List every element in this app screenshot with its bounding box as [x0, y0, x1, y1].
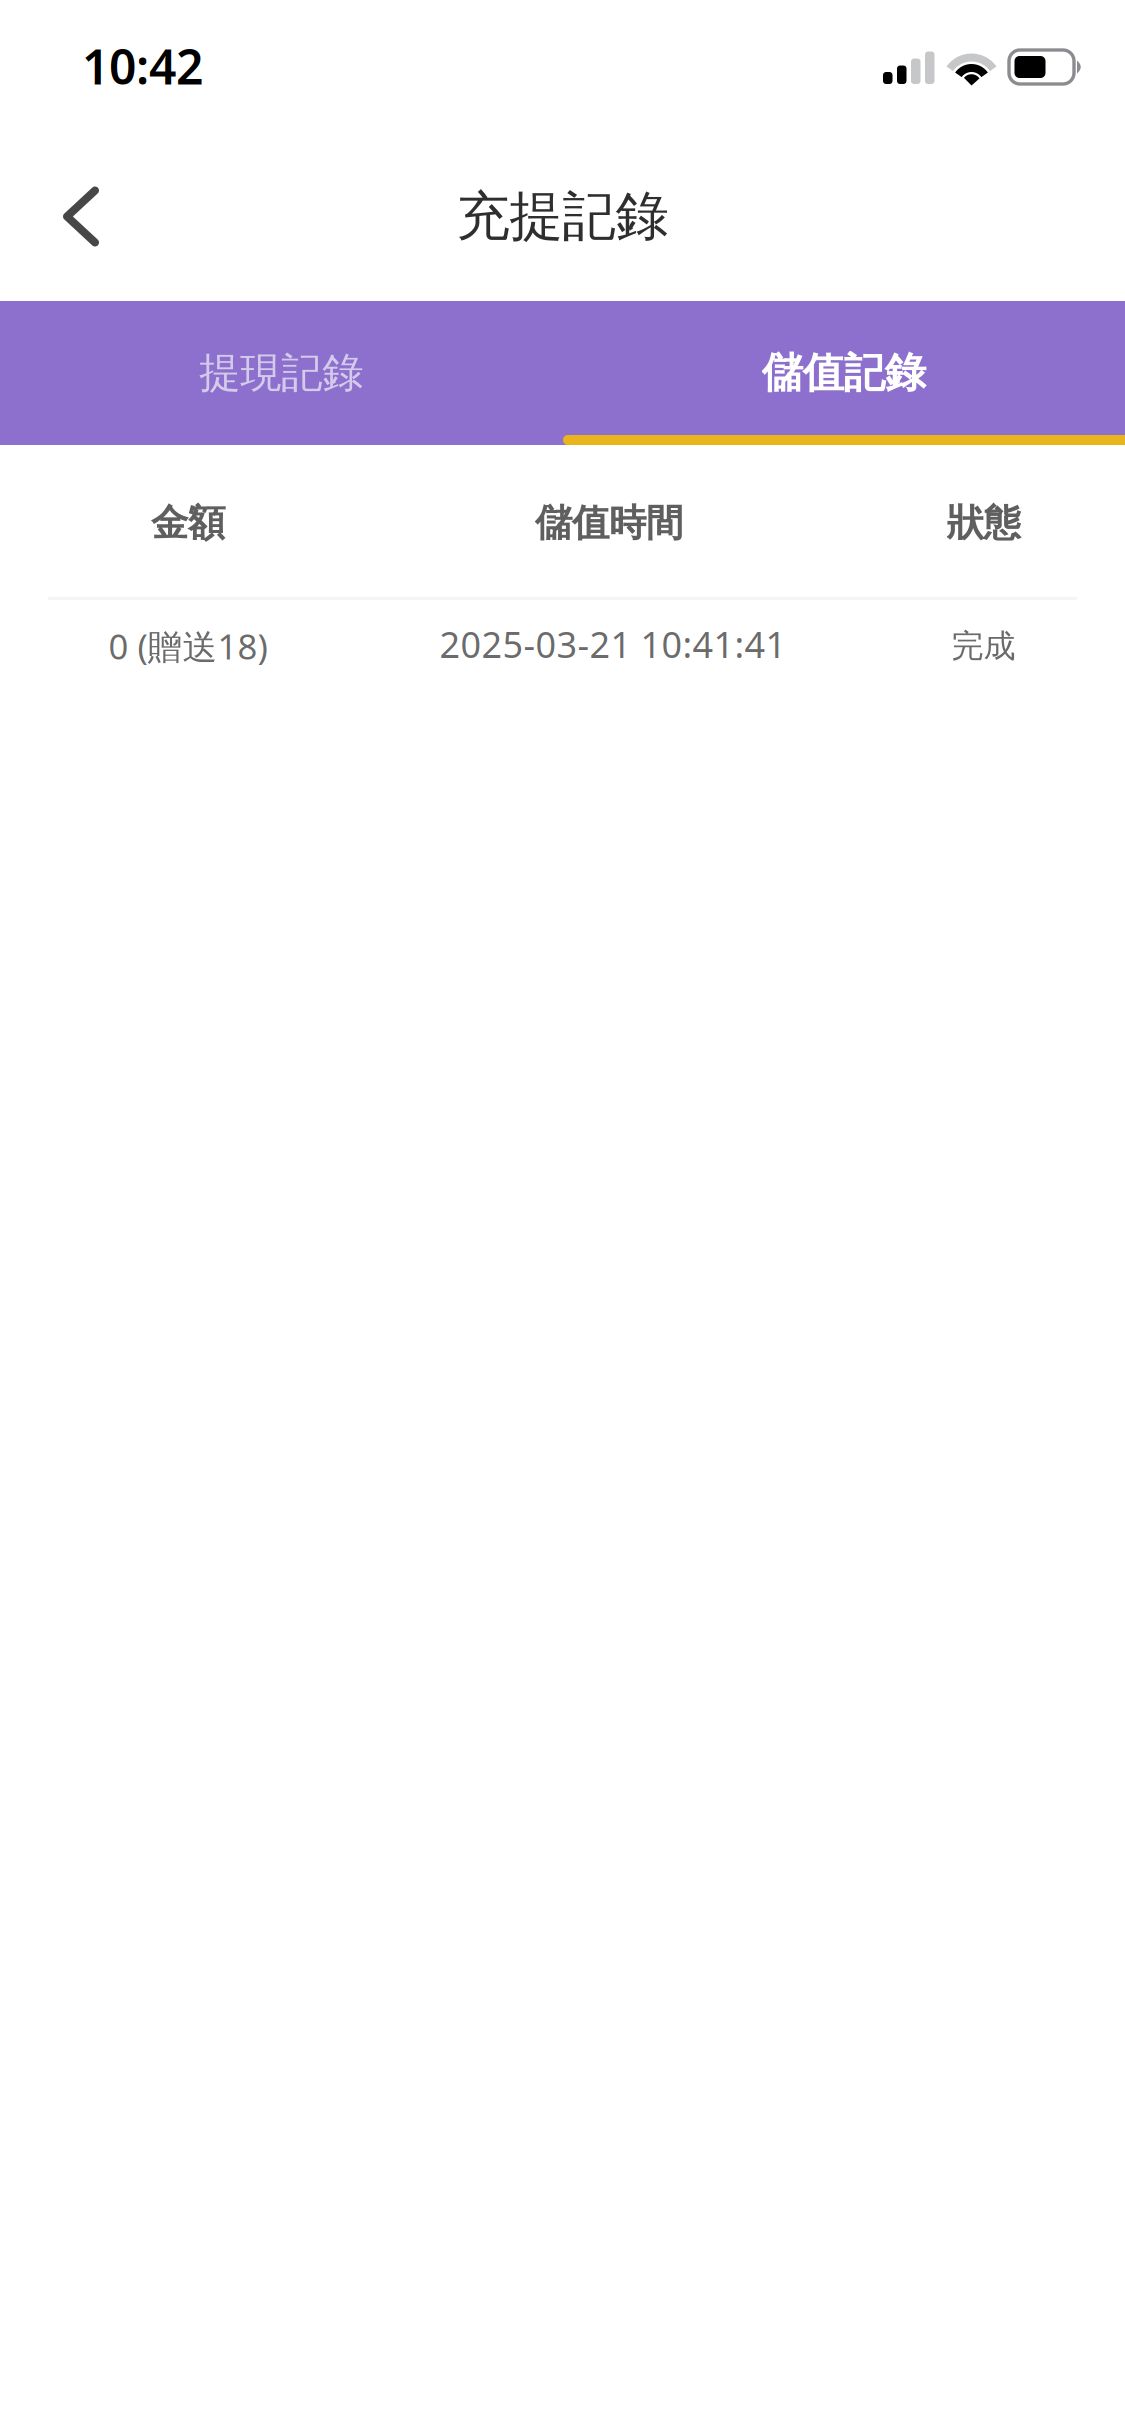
staticText: 狀態 — [946, 500, 1020, 546]
staticText: 儲值記錄 — [762, 348, 926, 398]
staticText: 0 (贈送18) — [108, 623, 267, 669]
button[interactable]: Back — [26, 161, 136, 271]
staticText: 完成 — [951, 626, 1015, 666]
button[interactable]: 提現記錄 — [0, 301, 562, 445]
staticText: 提現記錄 — [199, 348, 363, 398]
staticText: 儲值時間 — [535, 500, 683, 546]
staticText: 充提記錄 — [456, 184, 668, 249]
staticText: 10:42 — [82, 34, 203, 98]
button[interactable]: 儲值記錄 — [562, 301, 1125, 445]
staticText: 2025-03-21 10:41:41 — [439, 620, 786, 668]
staticText: 金額 — [151, 500, 225, 546]
